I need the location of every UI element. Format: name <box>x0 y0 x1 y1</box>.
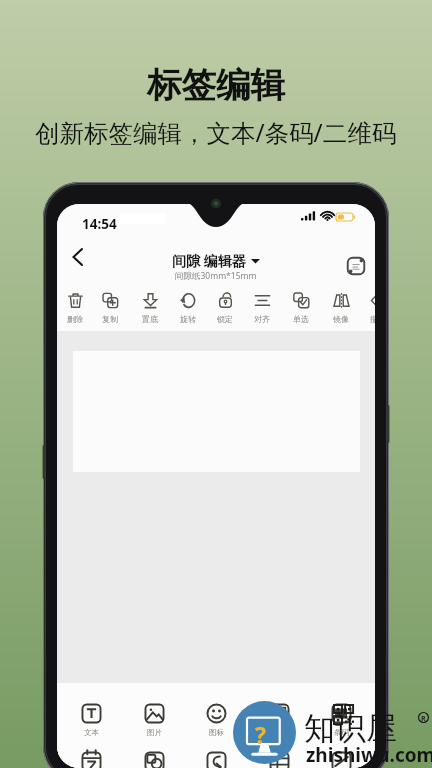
staticText: 撤 <box>370 314 375 324</box>
button[interactable]: 复制 <box>92 292 128 324</box>
staticText: 间隙纸30mm*15mm <box>175 270 257 282</box>
staticText: 文本 <box>84 728 99 737</box>
button[interactable]: 置底 <box>132 292 168 324</box>
staticText: 图片 <box>147 728 162 737</box>
staticText: 镜像 <box>333 314 349 324</box>
staticText: 复制 <box>102 314 118 324</box>
staticText: R <box>421 714 426 724</box>
button[interactable]: 单选 <box>283 292 319 324</box>
staticText: 置底 <box>142 314 158 324</box>
staticText: ? <box>255 719 266 750</box>
button[interactable]: 线条 <box>313 751 369 768</box>
staticText: 知识屋 <box>304 709 397 748</box>
button[interactable]: 旋转 <box>170 292 206 324</box>
staticText: 单选 <box>293 314 309 324</box>
staticText: 旋转 <box>180 314 196 324</box>
staticText: 对齐 <box>254 314 270 324</box>
button[interactable]: 二维码 <box>251 703 307 737</box>
button[interactable]: 撤 <box>356 292 375 324</box>
button[interactable]: 图片 <box>126 703 182 737</box>
button[interactable]: 形状 <box>126 751 182 768</box>
button[interactable]: 序列 <box>188 751 244 768</box>
staticText: 标签编辑 <box>147 64 285 107</box>
button[interactable]: 表格 <box>251 751 307 768</box>
button[interactable]: Back <box>65 244 97 276</box>
button[interactable]: 删除 <box>57 292 93 324</box>
button[interactable]: 条码 <box>313 703 369 737</box>
button[interactable]: 日期 <box>63 751 119 768</box>
staticText: 间隙 编辑器 <box>172 251 246 270</box>
button[interactable]: 镜像 <box>323 292 359 324</box>
staticText: 14:54 <box>82 215 117 233</box>
staticText: 图标 <box>209 728 224 737</box>
staticText: 锁定 <box>217 314 233 324</box>
button[interactable]: 对齐 <box>244 292 280 324</box>
button[interactable]: 文本 <box>63 703 119 737</box>
staticText: 创新标签编辑，文本/条码/二维码 <box>35 116 397 149</box>
staticText: zhishiwu.com <box>306 742 432 768</box>
button[interactable]: 间隙 编辑器 <box>161 249 271 281</box>
staticText: 二维码 <box>268 728 291 737</box>
button[interactable]: Scan label <box>347 257 365 275</box>
button[interactable]: 锁定 <box>207 292 243 324</box>
button[interactable]: 图标 <box>188 703 244 737</box>
staticText: 删除 <box>67 314 83 324</box>
staticText: 条码 <box>334 728 349 737</box>
